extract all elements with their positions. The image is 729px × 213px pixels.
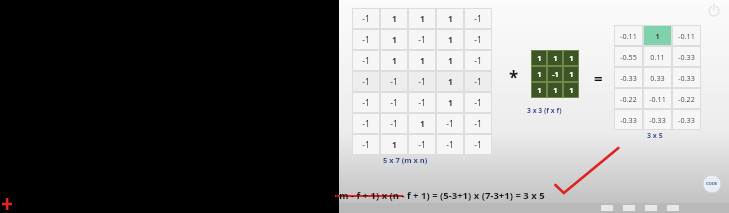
staticText: -1 <box>474 13 482 25</box>
staticText: 1 <box>448 97 453 109</box>
staticText: -0.11 <box>620 31 637 41</box>
button[interactable]: 1 <box>381 30 407 49</box>
button[interactable]: 1 <box>548 51 562 65</box>
button[interactable]: -0.33 <box>673 110 700 129</box>
button[interactable]: 1 <box>548 83 562 97</box>
button[interactable]: 1 <box>644 26 671 45</box>
button[interactable]: -1 <box>381 72 407 91</box>
button[interactable]: -0.11 <box>615 26 642 45</box>
button[interactable]: -1 <box>465 51 491 70</box>
button[interactable]: -1 <box>353 30 379 49</box>
staticText: -0.11 <box>649 94 666 104</box>
button[interactable]: -1 <box>548 67 562 81</box>
button[interactable]: -0.22 <box>673 89 700 108</box>
button[interactable]: -0.33 <box>615 110 642 129</box>
button[interactable]: -1 <box>353 9 379 28</box>
button[interactable]: 1 <box>437 9 463 28</box>
staticText: * <box>509 66 519 89</box>
staticText: -0.33 <box>678 73 695 83</box>
staticText: -0.22 <box>620 94 637 104</box>
staticText: -0.33 <box>678 115 695 125</box>
button[interactable]: -1 <box>465 93 491 112</box>
staticText: -1 <box>446 118 454 130</box>
staticText: 5 x 7 (m x n) <box>383 155 428 165</box>
button[interactable]: -0.11 <box>673 26 700 45</box>
staticText: -0.33 <box>620 73 637 83</box>
staticText: -0.22 <box>678 94 695 104</box>
staticText: (m - f + 1) x (n - f + 1) = (5-3+1) x (7… <box>336 189 545 202</box>
button[interactable]: 1 <box>381 9 407 28</box>
button[interactable]: 1 <box>532 83 546 97</box>
staticText: -0.33 <box>620 115 637 125</box>
button[interactable]: -1 <box>409 72 435 91</box>
button[interactable]: Power <box>707 3 721 17</box>
button[interactable]: -1 <box>409 135 435 154</box>
staticText: 1 <box>420 118 425 130</box>
button[interactable]: -0.11 <box>644 89 671 108</box>
button[interactable]: 1 <box>409 114 435 133</box>
button[interactable]: -0.33 <box>615 68 642 87</box>
button[interactable]: -0.33 <box>673 68 700 87</box>
staticText: -1 <box>552 69 559 79</box>
button[interactable]: -1 <box>437 135 463 154</box>
staticText: 1 <box>537 53 542 63</box>
button[interactable]: 1 <box>564 83 578 97</box>
button[interactable]: Channel logo <box>703 175 721 193</box>
staticText: CODE <box>706 181 718 187</box>
staticText: = <box>594 68 603 88</box>
button[interactable]: -0.33 <box>673 47 700 66</box>
button[interactable]: -1 <box>437 114 463 133</box>
staticText: -1 <box>362 97 370 109</box>
button[interactable]: 1 <box>532 67 546 81</box>
button[interactable]: -1 <box>465 30 491 49</box>
button[interactable]: 1 <box>381 51 407 70</box>
button[interactable]: -1 <box>381 93 407 112</box>
staticText: 1 <box>448 76 453 88</box>
button[interactable]: 1 <box>437 93 463 112</box>
button[interactable]: -0.33 <box>644 110 671 129</box>
button[interactable]: -1 <box>409 93 435 112</box>
button[interactable]: 1 <box>409 51 435 70</box>
staticText: 1 <box>553 85 558 95</box>
staticText: 0.11 <box>650 52 665 62</box>
button[interactable]: -1 <box>409 30 435 49</box>
button[interactable]: 1 <box>409 9 435 28</box>
staticText: -1 <box>362 76 370 88</box>
staticText: 0.33 <box>650 73 665 83</box>
staticText: 1 <box>420 13 425 25</box>
button[interactable]: 1 <box>437 72 463 91</box>
button[interactable]: 0.33 <box>644 68 671 87</box>
staticText: 1 <box>553 53 558 63</box>
button[interactable]: 1 <box>381 135 407 154</box>
button[interactable]: -0.22 <box>615 89 642 108</box>
staticText: -1 <box>474 34 482 46</box>
button[interactable]: -1 <box>465 114 491 133</box>
button[interactable]: -1 <box>381 114 407 133</box>
button[interactable]: 1 <box>437 30 463 49</box>
button[interactable]: -1 <box>353 93 379 112</box>
staticText: 3 x 3 (f x f) <box>527 106 562 115</box>
staticText: 1 <box>569 53 574 63</box>
staticText: 1 <box>420 55 425 67</box>
staticText: 1 <box>537 85 542 95</box>
button[interactable]: -1 <box>353 114 379 133</box>
button[interactable]: -1 <box>353 135 379 154</box>
staticText: 1 <box>569 85 574 95</box>
button[interactable]: -1 <box>465 72 491 91</box>
button[interactable]: 1 <box>564 51 578 65</box>
button[interactable]: -1 <box>353 72 379 91</box>
button[interactable]: 1 <box>532 51 546 65</box>
staticText: -1 <box>474 97 482 109</box>
staticText: 1 <box>448 55 453 67</box>
button[interactable]: -1 <box>465 135 491 154</box>
button[interactable]: -1 <box>353 51 379 70</box>
button[interactable]: 0.11 <box>644 47 671 66</box>
button[interactable]: 1 <box>437 51 463 70</box>
button[interactable]: 1 <box>564 67 578 81</box>
button[interactable]: -0.55 <box>615 47 642 66</box>
button[interactable]: -1 <box>465 9 491 28</box>
